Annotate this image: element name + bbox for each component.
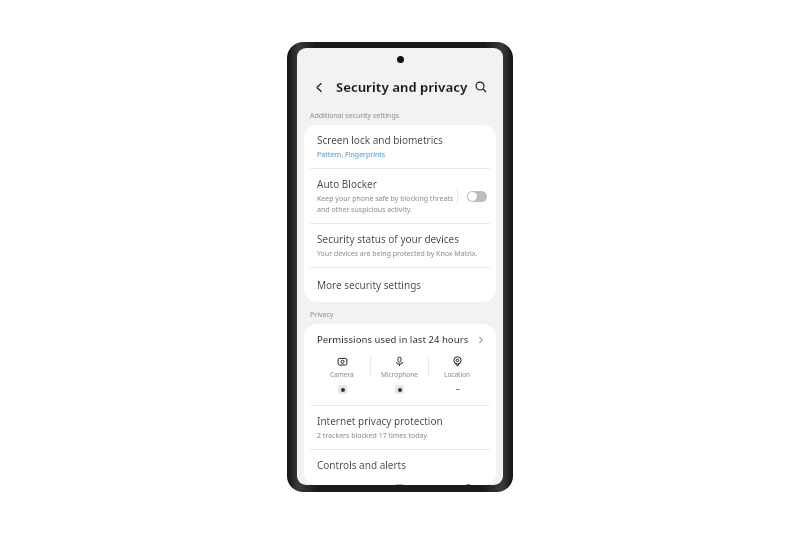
staticText: Internet privacy protection (317, 414, 443, 428)
staticText: Privacy (310, 310, 334, 320)
button[interactable]: More security settings (304, 268, 496, 302)
button[interactable]: Permissions used in last 24 hours (304, 324, 496, 351)
button[interactable]: Auto Blocker (304, 169, 496, 223)
staticText: Security status of your devices (317, 232, 459, 246)
button[interactable]: Microphone (371, 356, 428, 394)
staticText: Security and privacy (336, 78, 468, 96)
staticText: and other suspicious activity. (317, 205, 412, 215)
button[interactable]: Screen lock and biometrics (304, 125, 496, 168)
button[interactable]: Internet privacy protection (304, 406, 496, 449)
button[interactable]: Search (471, 77, 491, 97)
staticText: More security settings (317, 278, 422, 292)
staticText: Screen lock and biometrics (317, 133, 443, 147)
button[interactable]: Controls and alerts (304, 450, 496, 485)
button[interactable]: Location (429, 356, 486, 394)
staticText: Pattern, Fingerprints (317, 150, 386, 160)
button[interactable]: Security status of your devices (304, 224, 496, 267)
staticText: Controls and alerts (317, 458, 407, 472)
staticText: Your devices are being protected by Knox… (317, 249, 478, 259)
staticText: Permissions used in last 24 hours (317, 333, 469, 346)
button[interactable]: Back (309, 77, 329, 97)
staticText: Camera (330, 370, 354, 379)
staticText: Additional security settings (310, 111, 400, 121)
staticText: Location (444, 370, 471, 379)
staticText: Microphone (381, 370, 418, 379)
staticText: 2 trackers blocked 17 times today (317, 431, 428, 441)
button[interactable]: Camera (314, 356, 370, 394)
button[interactable]: Auto Blocker (467, 191, 487, 202)
staticText: Auto Blocker (317, 177, 377, 191)
staticText: Keep your phone safe by blocking threats (317, 194, 454, 204)
